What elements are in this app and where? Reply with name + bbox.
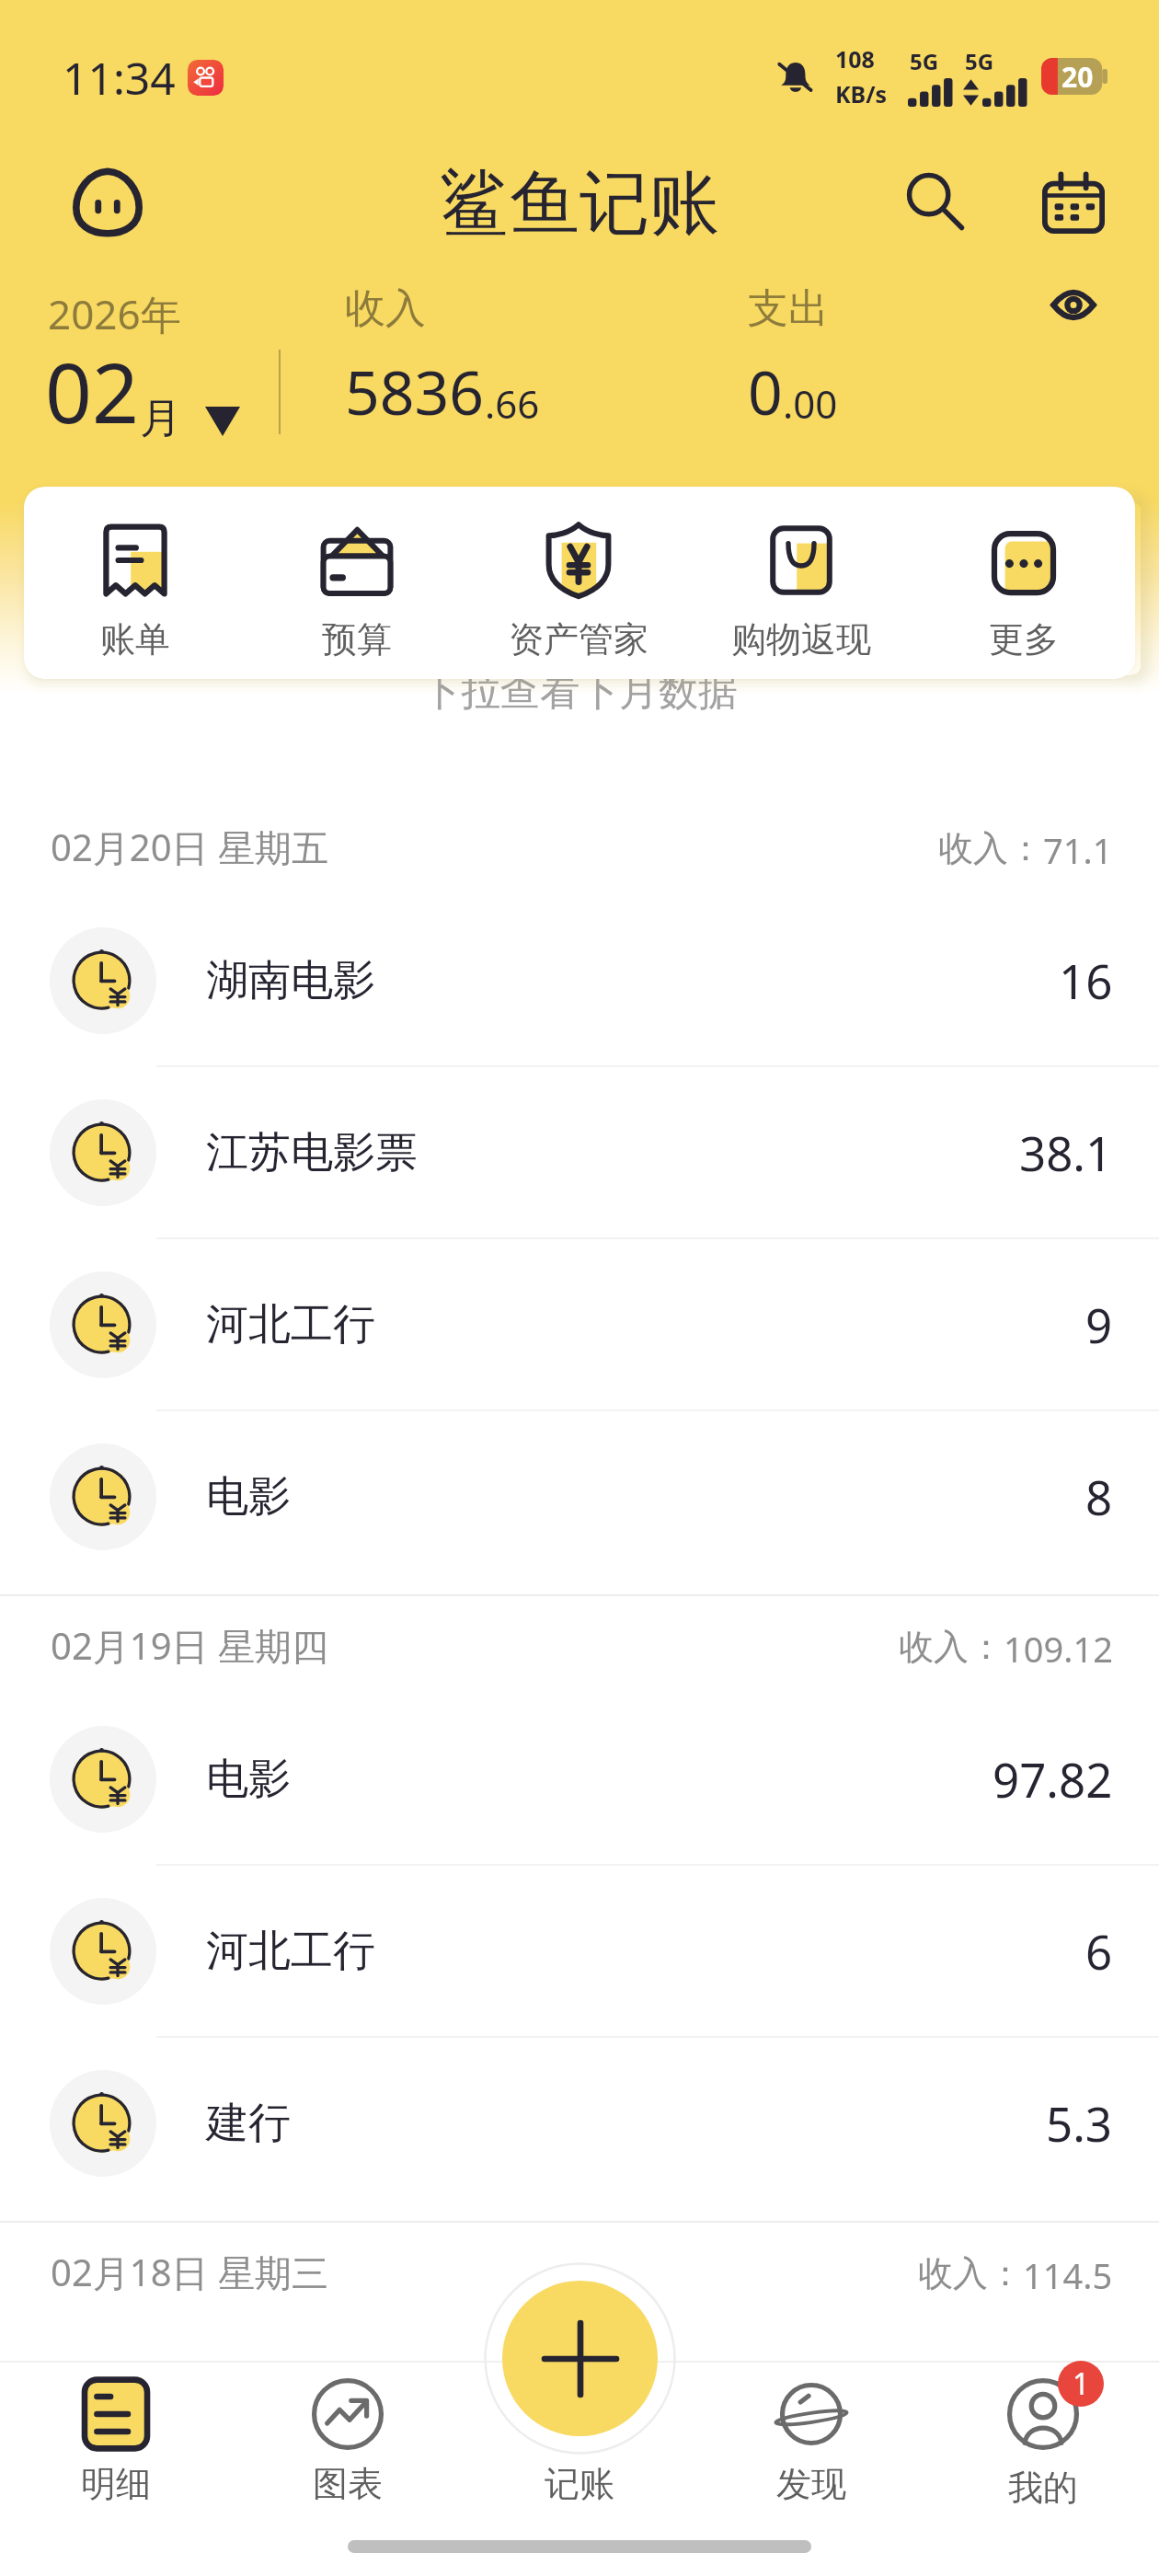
- button[interactable]: 河北工行: [0, 1239, 1159, 1409]
- button[interactable]: 记账: [464, 2375, 695, 2506]
- staticText: 湖南电影: [206, 954, 375, 1007]
- button[interactable]: 图表: [232, 2375, 464, 2506]
- button[interactable]: 预算: [246, 487, 467, 679]
- button[interactable]: 河北工行: [0, 1866, 1159, 2036]
- button[interactable]: 江苏电影票: [0, 1067, 1159, 1237]
- staticText: 114.5: [1023, 2251, 1113, 2299]
- staticText: 6: [1085, 1919, 1113, 1983]
- staticText: 0: [748, 350, 783, 432]
- staticText: KB/s: [835, 78, 888, 109]
- staticText: 河北工行: [206, 1298, 375, 1351]
- staticText: 河北工行: [206, 1925, 375, 1978]
- staticText: 发现: [776, 2462, 846, 2506]
- staticText: 收入：: [938, 826, 1043, 870]
- button[interactable]: 1: [927, 2375, 1159, 2510]
- button[interactable]: 发现: [695, 2375, 927, 2506]
- staticText: 江苏电影票: [206, 1126, 418, 1179]
- staticText: 电影: [206, 1470, 291, 1524]
- staticText: 5G: [910, 46, 939, 76]
- staticText: 16: [1059, 949, 1113, 1012]
- staticText: 记账: [545, 2462, 614, 2506]
- staticText: 购物返现: [731, 617, 871, 661]
- staticText: 资产管家: [509, 617, 648, 661]
- staticText: 02月18日 星期三: [51, 2247, 328, 2297]
- button[interactable]: 建行: [0, 2038, 1159, 2208]
- button[interactable]: Search: [892, 158, 981, 247]
- staticText: 月: [140, 393, 181, 445]
- button[interactable]: Calendar: [1029, 158, 1118, 247]
- staticText: 建行: [206, 2097, 291, 2150]
- button[interactable]: 账单: [24, 487, 246, 679]
- staticText: 5G: [965, 46, 994, 76]
- button[interactable]: 资产管家: [467, 487, 690, 679]
- staticText: 明细: [81, 2462, 151, 2506]
- staticText: 收入：: [918, 2251, 1023, 2295]
- staticText: 收入：: [899, 1625, 1004, 1669]
- button[interactable]: 购物返现: [690, 487, 912, 679]
- staticText: 2026年: [48, 286, 181, 341]
- staticText: 20: [1061, 58, 1094, 95]
- button[interactable]: 明细: [0, 2375, 232, 2506]
- staticText: 5836: [345, 350, 485, 432]
- staticText: 02月20日 星期五: [51, 822, 328, 872]
- staticText: 我的: [1008, 2466, 1078, 2510]
- staticText: 02: [45, 336, 139, 447]
- staticText: 电影: [206, 1753, 291, 1806]
- staticText: 更多: [989, 617, 1059, 661]
- staticText: 11:34: [63, 48, 176, 108]
- button[interactable]: Add record: [502, 2281, 658, 2436]
- staticText: 38.1: [1019, 1121, 1113, 1184]
- staticText: 预算: [322, 617, 392, 661]
- staticText: 02月19日 星期四: [51, 1620, 328, 1671]
- staticText: 收入: [345, 283, 426, 334]
- button[interactable]: Toggle amount visibility: [1036, 267, 1111, 342]
- button[interactable]: 湖南电影: [0, 895, 1159, 1065]
- button[interactable]: Profile: [63, 158, 152, 247]
- staticText: 71.1: [1043, 826, 1113, 874]
- staticText: 鲨鱼记账: [440, 160, 719, 248]
- staticText: 下拉查看下月数据: [421, 667, 738, 717]
- staticText: 97.82: [993, 1747, 1113, 1811]
- button[interactable]: 更多: [912, 487, 1135, 679]
- staticText: 109.12: [1004, 1625, 1113, 1673]
- staticText: 账单: [100, 617, 170, 661]
- staticText: 图表: [313, 2462, 383, 2506]
- staticText: 5.3: [1046, 2091, 1113, 2155]
- staticText: 支出: [748, 283, 829, 334]
- staticText: 8: [1085, 1465, 1113, 1528]
- staticText: 1: [1073, 2363, 1090, 2404]
- staticText: .00: [783, 377, 838, 430]
- button[interactable]: 电影: [0, 1411, 1159, 1581]
- staticText: 108: [835, 43, 875, 75]
- staticText: .66: [485, 377, 540, 430]
- staticText: 9: [1085, 1293, 1113, 1356]
- button[interactable]: 电影: [0, 1694, 1159, 1864]
